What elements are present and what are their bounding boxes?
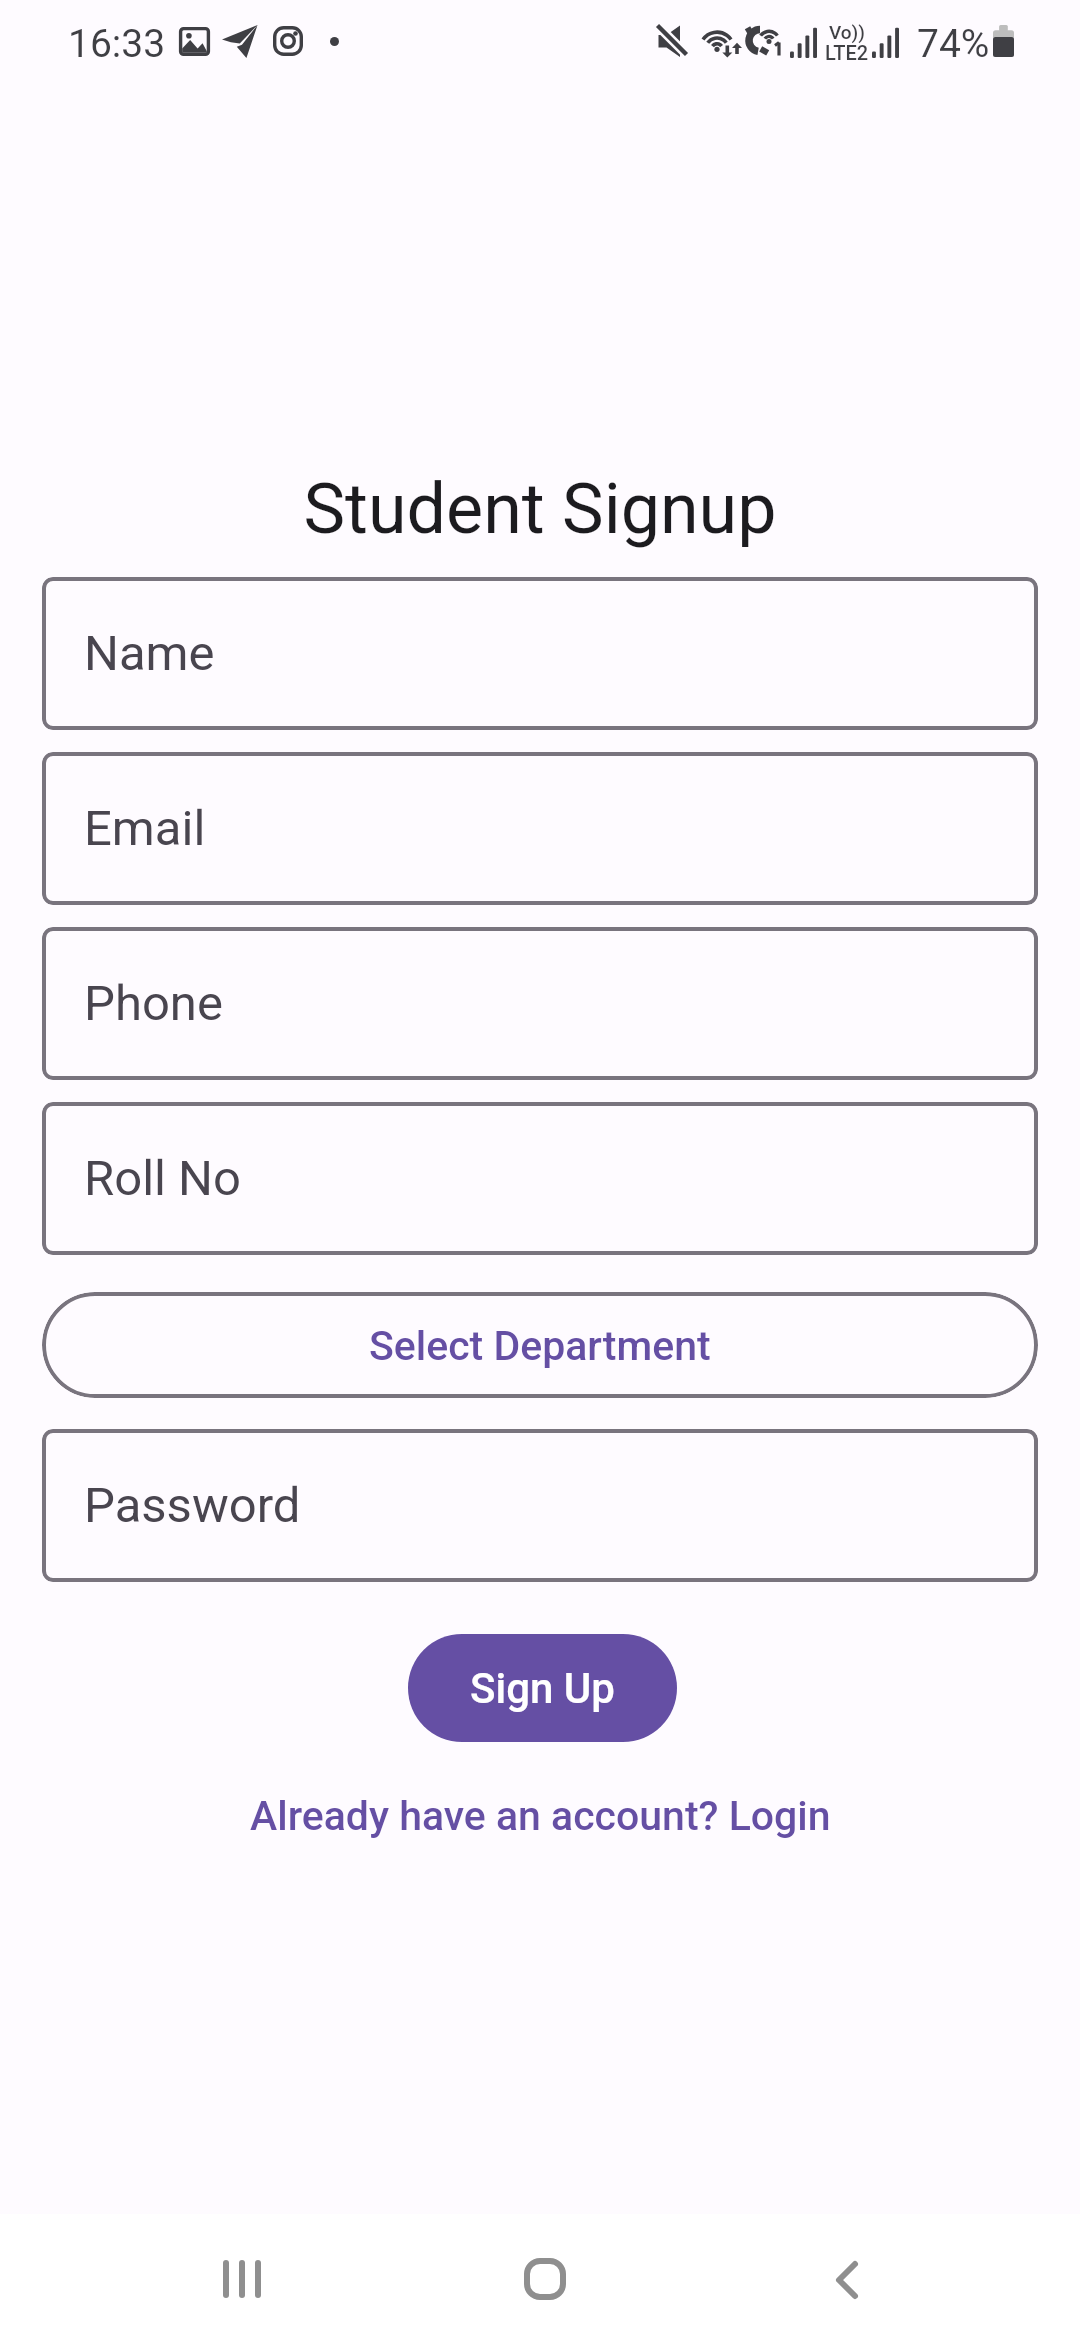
button[interactable]: Select Department [42, 1292, 1038, 1398]
button[interactable]: Name [42, 577, 1038, 730]
button[interactable]: Email [42, 752, 1038, 905]
staticText: Name [84, 625, 215, 682]
staticText: Vo)) [829, 21, 865, 43]
button[interactable]: Sign Up [408, 1634, 677, 1742]
button[interactable]: Recent apps [180, 2217, 304, 2340]
staticText: Email [84, 800, 206, 857]
button[interactable]: Phone [42, 927, 1038, 1080]
button[interactable]: Back [785, 2218, 909, 2340]
staticText: Roll No [84, 1150, 242, 1207]
staticText: Already have an account? Login [250, 1792, 831, 1840]
staticText: Phone [84, 975, 223, 1032]
staticText: Sign Up [470, 1664, 615, 1713]
button[interactable]: Home [483, 2217, 607, 2340]
staticText: LTE2 [825, 41, 869, 64]
button[interactable]: Roll No [42, 1102, 1038, 1255]
staticText: 16:33 [68, 21, 166, 67]
staticText: 74% [917, 21, 990, 67]
staticText: Select Department [369, 1322, 711, 1370]
staticText: Student Signup [0, 468, 1080, 550]
button[interactable]: Already have an account? Login [234, 1784, 847, 1848]
staticText: Password [84, 1477, 301, 1534]
button[interactable]: Password [42, 1429, 1038, 1582]
